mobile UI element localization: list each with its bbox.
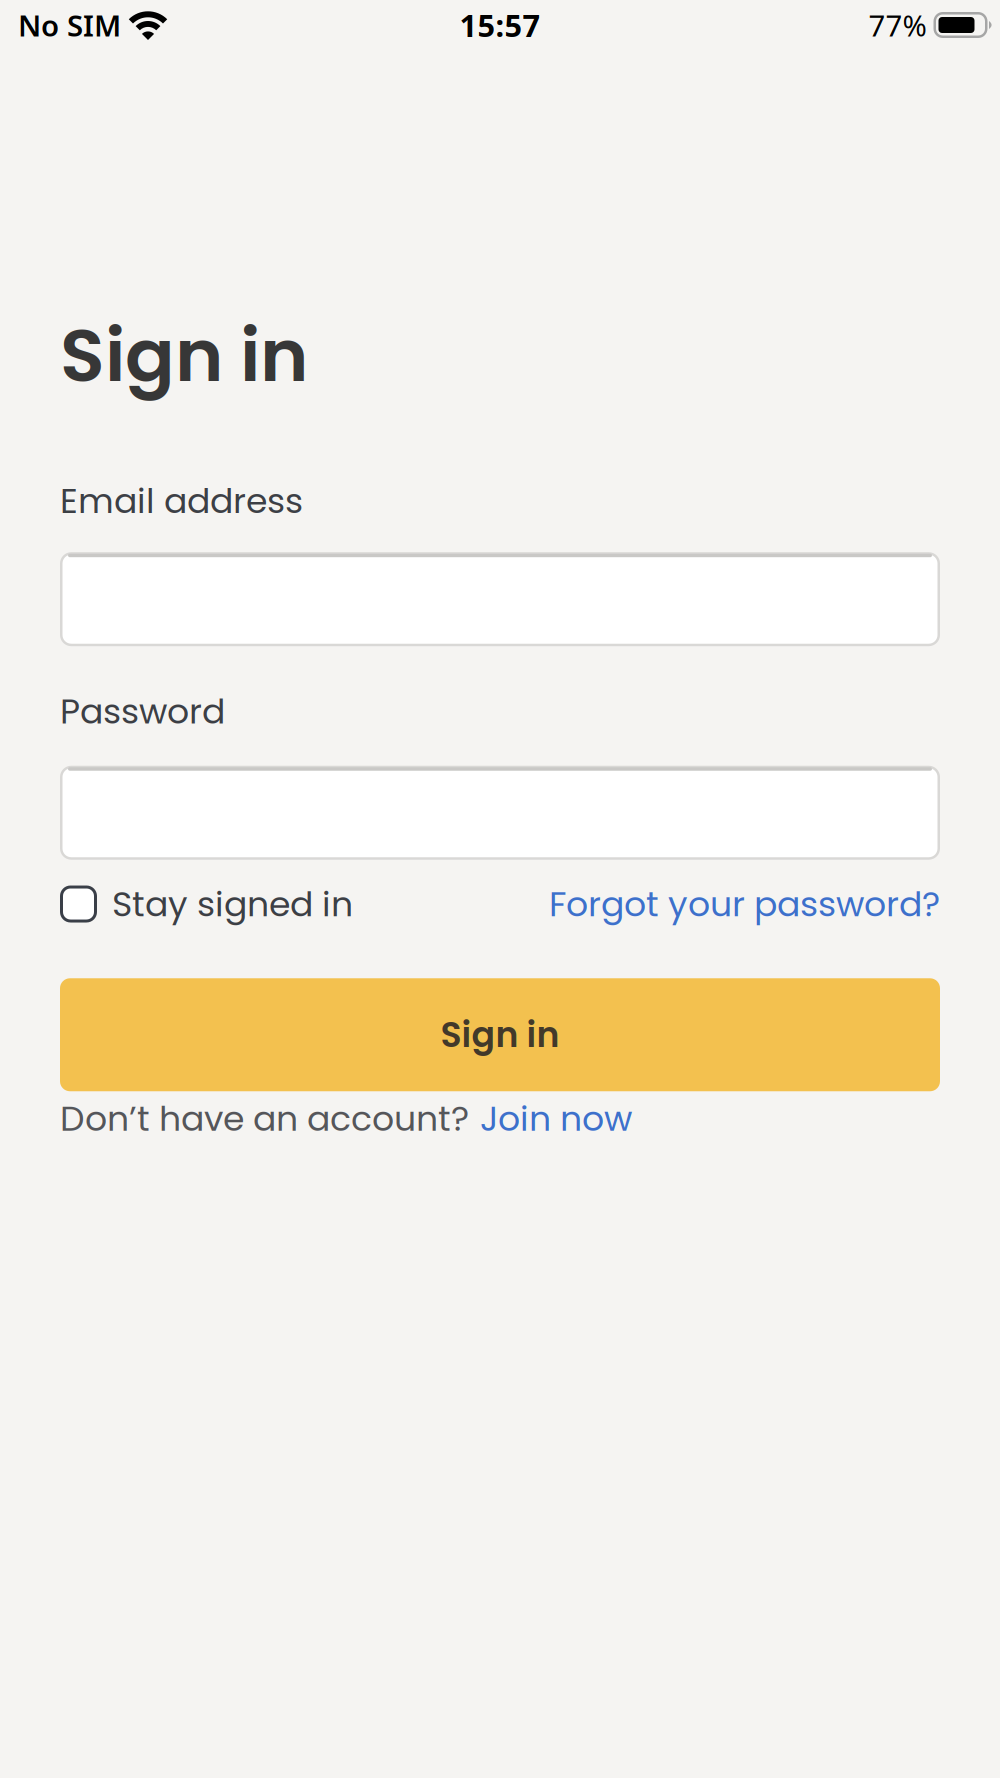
- staticText: 15:57: [459, 5, 540, 45]
- staticText: Password: [60, 687, 225, 736]
- staticText: Stay signed in: [112, 880, 353, 928]
- button[interactable]: Email address: [60, 552, 940, 646]
- staticText: Forgot your password?: [549, 880, 940, 928]
- staticText: Don’t have an account?: [60, 1094, 469, 1143]
- button[interactable]: Forgot your password?: [549, 880, 940, 928]
- button[interactable]: Password: [60, 766, 940, 860]
- button[interactable]: Stay signed in: [60, 880, 353, 928]
- staticText: Sign in: [440, 1010, 559, 1059]
- staticText: Email address: [60, 477, 303, 525]
- button[interactable]: Join now: [480, 1094, 632, 1143]
- staticText: 77%: [868, 5, 926, 44]
- staticText: Join now: [480, 1094, 632, 1143]
- staticText: No SIM: [18, 5, 121, 44]
- staticText: Sign in: [60, 304, 308, 407]
- button[interactable]: Sign in: [60, 978, 940, 1091]
